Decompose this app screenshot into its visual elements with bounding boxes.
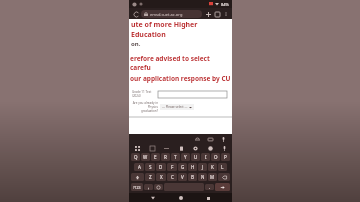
button[interactable]: Settings	[191, 144, 199, 152]
staticText: U	[194, 154, 198, 160]
button[interactable]: Recent apps	[204, 194, 212, 202]
staticText: --- Please select ---	[162, 105, 188, 109]
staticText: ?123	[133, 185, 141, 190]
staticText: emsd.cuet.ac.org	[150, 12, 183, 17]
staticText: P	[224, 154, 227, 160]
staticText: erefore advised to select carefu	[130, 54, 232, 72]
button[interactable]: R	[161, 153, 170, 161]
button[interactable]: Undo	[193, 135, 201, 143]
staticText: W	[143, 154, 148, 160]
button[interactable]	[158, 91, 227, 98]
staticText: G	[181, 164, 185, 170]
button[interactable]: T	[171, 153, 180, 161]
staticText: R	[164, 154, 167, 160]
button[interactable]: Apps	[133, 144, 141, 152]
staticText: C	[171, 174, 174, 180]
button[interactable]: D	[156, 163, 166, 171]
button[interactable]: A	[134, 163, 144, 171]
staticText: L	[221, 164, 224, 170]
staticText: K	[211, 164, 214, 170]
button[interactable]: I	[201, 153, 210, 161]
button[interactable]: Y	[181, 153, 190, 161]
staticText: F	[171, 164, 174, 170]
staticText: M	[210, 174, 215, 180]
button[interactable]: U	[191, 153, 200, 161]
button[interactable]: Emoji	[206, 144, 214, 152]
staticText: E	[154, 154, 157, 160]
button[interactable]: Back	[149, 194, 157, 202]
staticText: graduation?	[132, 109, 158, 113]
button[interactable]: emsd.cuet.ac.org	[141, 10, 202, 18]
button[interactable]: More options	[222, 10, 229, 17]
staticText: A	[138, 164, 141, 170]
button[interactable]: Enter	[215, 183, 230, 191]
button[interactable]: Z	[145, 173, 155, 181]
button[interactable]: N	[198, 173, 207, 181]
staticText: N	[201, 174, 205, 180]
button[interactable]: P	[221, 153, 230, 161]
button[interactable]: .	[205, 184, 214, 190]
button[interactable]: S	[145, 163, 155, 171]
button[interactable]: Themes	[148, 144, 156, 152]
staticText: Grade 11 Test (2024)	[132, 90, 158, 98]
staticText: D	[159, 164, 163, 170]
staticText: Z	[149, 174, 152, 180]
button[interactable]: Home	[177, 194, 185, 202]
button[interactable]: Sticker	[162, 144, 170, 152]
button[interactable]: Voice input	[219, 135, 227, 143]
staticText: our application response by CU	[130, 74, 231, 83]
button[interactable]: ?123	[131, 183, 143, 191]
button[interactable]: O	[211, 153, 220, 161]
button[interactable]: --- Please select ---	[160, 104, 194, 110]
button[interactable]: W	[141, 153, 150, 161]
button[interactable]: ,	[144, 184, 153, 190]
staticText: S	[149, 164, 152, 170]
staticText: B	[191, 174, 194, 180]
staticText: on.	[131, 40, 141, 48]
button[interactable]: New tab	[204, 10, 212, 18]
staticText: O	[214, 154, 218, 160]
button[interactable]: G	[178, 163, 187, 171]
button[interactable]: E	[151, 153, 160, 161]
staticText: T	[174, 154, 177, 160]
button[interactable]: B	[188, 173, 197, 181]
staticText: ,	[148, 184, 150, 190]
staticText: Are you already in Physics	[132, 101, 158, 109]
staticText: H	[191, 164, 195, 170]
button[interactable]: Shift	[131, 173, 144, 181]
staticText: .	[209, 184, 211, 190]
button[interactable]: Keyboard layout	[206, 135, 214, 143]
button[interactable]: Voice typing	[220, 144, 228, 152]
staticText: X	[160, 174, 163, 180]
button[interactable]: Backspace	[218, 173, 230, 181]
button[interactable]: M	[208, 173, 217, 181]
button[interactable]: Reload	[132, 10, 140, 18]
button[interactable]: Clipboard	[177, 144, 185, 152]
button[interactable]: H	[188, 163, 197, 171]
button[interactable]: Tabs	[213, 10, 221, 18]
staticText: Q	[134, 154, 138, 160]
button[interactable]: Emoji	[154, 184, 163, 190]
button[interactable]: V	[178, 173, 187, 181]
staticText: ute of more Higher Education	[131, 20, 232, 40]
button[interactable]: K	[208, 163, 217, 171]
button[interactable]: L	[218, 163, 227, 171]
button[interactable]: X	[156, 173, 166, 181]
button[interactable]: Q	[131, 153, 140, 161]
staticText: 84%	[221, 2, 229, 7]
staticText: V	[181, 174, 184, 180]
staticText: Y	[184, 154, 187, 160]
staticText: I	[205, 154, 207, 160]
button[interactable]: C	[167, 173, 177, 181]
button[interactable]: F	[167, 163, 177, 171]
staticText: J	[202, 164, 204, 170]
button[interactable]: J	[198, 163, 207, 171]
